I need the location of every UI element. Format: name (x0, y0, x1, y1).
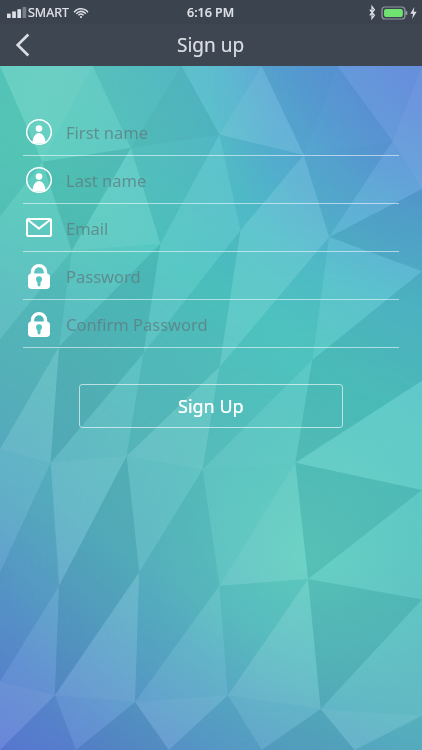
staticText: SMART (28, 4, 69, 21)
staticText: Sign up (177, 32, 245, 58)
staticText: Password (66, 265, 141, 287)
button[interactable]: Sign Up (79, 384, 343, 428)
staticText: Email (66, 217, 109, 239)
staticText: Sign Up (178, 394, 244, 419)
staticText: 6:16 PM (187, 4, 235, 21)
staticText: Last name (66, 169, 147, 191)
staticText: Confirm Password (66, 313, 208, 335)
button[interactable]: Email (0, 204, 422, 252)
button[interactable]: Confirm Password (0, 300, 422, 348)
button[interactable]: Last name (0, 156, 422, 204)
button[interactable]: First name (0, 108, 422, 156)
button[interactable]: Back (0, 24, 46, 66)
staticText: First name (66, 121, 148, 143)
button[interactable]: Password (0, 252, 422, 300)
